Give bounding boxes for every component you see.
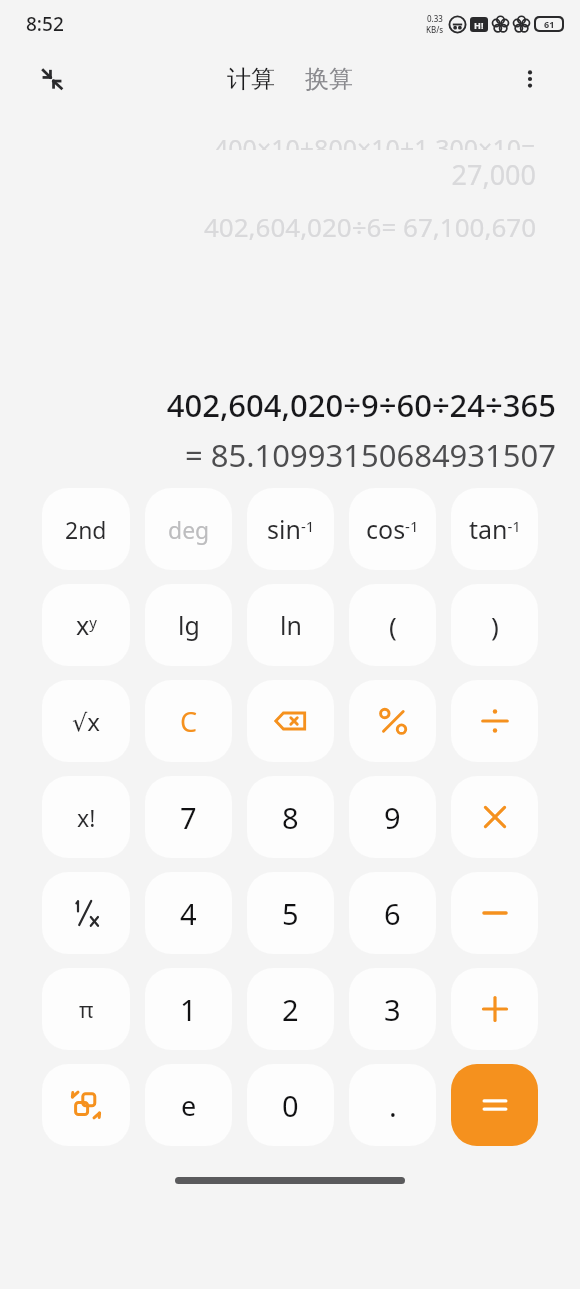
button[interactable]: 计算 xyxy=(221,58,281,100)
staticText: π xyxy=(79,994,94,1024)
staticText: 402,604,020÷6= 67,100,670 xyxy=(44,209,536,244)
button[interactable]: More options xyxy=(508,57,552,101)
button[interactable]: Plus xyxy=(451,968,538,1050)
button[interactable]: Percent xyxy=(349,680,436,762)
staticText: 计算 xyxy=(227,64,275,94)
button[interactable]: tan-1 xyxy=(451,488,538,570)
staticText: 0 xyxy=(282,1086,299,1125)
staticText: 2 xyxy=(282,990,299,1029)
staticText: ( xyxy=(389,608,397,643)
button[interactable]: x! xyxy=(42,776,130,858)
button[interactable]: 7 xyxy=(145,776,232,858)
button[interactable]: xy xyxy=(42,584,130,666)
button[interactable]: 5 xyxy=(247,872,334,954)
staticText: 换算 xyxy=(305,64,353,94)
button[interactable]: 2 xyxy=(247,968,334,1050)
staticText: 61 xyxy=(544,18,555,30)
staticText: 5 xyxy=(282,894,299,933)
button[interactable]: Minus xyxy=(451,872,538,954)
button[interactable]: ( xyxy=(349,584,436,666)
button[interactable]: Divide xyxy=(451,680,538,762)
button[interactable]: Multiply xyxy=(451,776,538,858)
staticText: KB/s xyxy=(426,24,444,35)
button[interactable]: 6 xyxy=(349,872,436,954)
staticText: 6 xyxy=(384,894,401,933)
button[interactable]: 换算 xyxy=(299,58,359,100)
staticText: 4 xyxy=(180,894,197,933)
staticText: √x xyxy=(72,705,100,738)
staticText: 1 xyxy=(180,990,197,1029)
staticText: C xyxy=(180,703,198,740)
staticText: lg xyxy=(178,608,200,642)
staticText: 8 xyxy=(282,798,299,837)
staticText: deg xyxy=(168,514,210,545)
button[interactable]: C xyxy=(145,680,232,762)
staticText: 400×10+800×10+1,300×10= xyxy=(214,131,536,150)
button[interactable]: sin-1 xyxy=(247,488,334,570)
button[interactable]: 3 xyxy=(349,968,436,1050)
staticText: 3 xyxy=(384,990,401,1029)
staticText: xy xyxy=(76,608,97,642)
button[interactable]: ) xyxy=(451,584,538,666)
button[interactable]: Unit conversion xyxy=(42,1064,130,1146)
staticText: ln xyxy=(280,608,302,642)
button[interactable]: 1 xyxy=(145,968,232,1050)
button[interactable]: Square root xyxy=(42,680,130,762)
staticText: . xyxy=(389,1086,397,1125)
staticText: sin-1 xyxy=(267,512,315,546)
button[interactable]: cos-1 xyxy=(349,488,436,570)
staticText: 9 xyxy=(384,798,401,837)
button[interactable]: lg xyxy=(145,584,232,666)
staticText: 402,604,020÷9÷60÷24÷365 xyxy=(24,384,556,426)
staticText: 27,000 xyxy=(44,156,536,193)
staticText: H! xyxy=(474,19,484,31)
staticText: tan-1 xyxy=(469,512,521,546)
button[interactable] xyxy=(42,872,130,954)
button[interactable]: 2nd xyxy=(42,488,130,570)
staticText: 2nd xyxy=(65,514,107,545)
button[interactable]: ln xyxy=(247,584,334,666)
button[interactable]: Collapse xyxy=(30,57,74,101)
button[interactable]: π xyxy=(42,968,130,1050)
staticText: x! xyxy=(77,802,96,833)
button[interactable]: deg xyxy=(145,488,232,570)
button[interactable]: Backspace xyxy=(247,680,334,762)
staticText: cos-1 xyxy=(366,512,419,546)
button[interactable]: Equals xyxy=(451,1064,538,1146)
button[interactable]: 8 xyxy=(247,776,334,858)
staticText: e xyxy=(181,1087,197,1124)
staticText: = 85.10993150684931507 xyxy=(24,434,556,476)
staticText: 0.33 xyxy=(427,13,443,24)
button[interactable]: 9 xyxy=(349,776,436,858)
staticText: ) xyxy=(491,608,499,643)
staticText: 7 xyxy=(180,798,197,837)
button[interactable]: . xyxy=(349,1064,436,1146)
button[interactable]: e xyxy=(145,1064,232,1146)
button[interactable]: 4 xyxy=(145,872,232,954)
button[interactable]: 0 xyxy=(247,1064,334,1146)
staticText: 8:52 xyxy=(26,11,64,37)
